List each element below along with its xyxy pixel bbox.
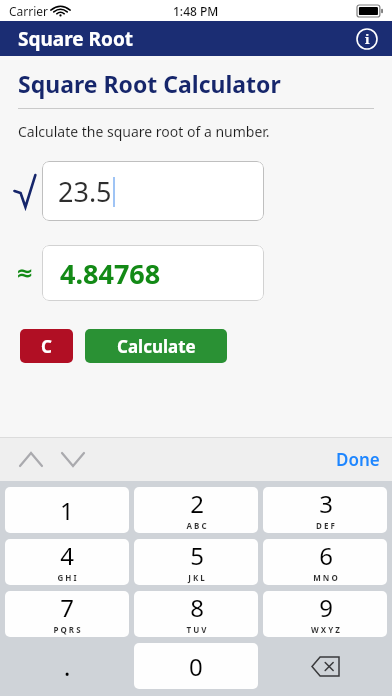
staticText: Square Root xyxy=(18,26,134,52)
staticText: 7 xyxy=(60,591,74,624)
button[interactable]: Info xyxy=(354,26,380,52)
button[interactable]: 6 xyxy=(263,539,387,585)
staticText: Calculate the square root of a number. xyxy=(18,122,270,141)
button[interactable]: Calculate xyxy=(85,329,227,363)
staticText: 2 xyxy=(190,487,204,520)
staticText: 6 xyxy=(319,539,333,572)
button[interactable]: 9 xyxy=(263,591,387,637)
staticText: W X Y Z xyxy=(311,624,340,635)
staticText: 4.84768 xyxy=(60,255,161,292)
button[interactable]: 5 xyxy=(134,539,258,585)
button[interactable]: Done xyxy=(336,448,380,471)
staticText: 4 xyxy=(60,539,74,572)
button[interactable]: C xyxy=(20,329,73,363)
staticText: ≈ xyxy=(16,261,34,285)
staticText: 0 xyxy=(189,650,203,683)
staticText: 8 xyxy=(190,591,204,624)
button[interactable]: 3 xyxy=(263,487,387,533)
staticText: . xyxy=(64,651,71,682)
button[interactable]: 8 xyxy=(134,591,258,637)
staticText: 1:48 PM xyxy=(173,3,219,19)
button[interactable]: 4 xyxy=(5,539,129,585)
staticText: M N O xyxy=(313,572,338,583)
staticText: P Q R S xyxy=(53,624,81,635)
staticText: 1 xyxy=(60,494,74,527)
staticText: J K L xyxy=(188,572,205,583)
staticText: A B C xyxy=(186,520,207,531)
staticText: Calculate xyxy=(117,335,196,358)
staticText: i xyxy=(365,30,370,48)
button[interactable]: Previous field xyxy=(14,444,48,474)
staticText: Done xyxy=(336,448,380,471)
button[interactable]: 7 xyxy=(5,591,129,637)
staticText: T U V xyxy=(186,624,207,635)
button[interactable]: . xyxy=(5,643,129,689)
staticText: C xyxy=(41,335,52,358)
button[interactable]: 1 xyxy=(5,487,129,533)
staticText: D E F xyxy=(316,520,335,531)
button[interactable]: 0 xyxy=(134,643,258,689)
staticText: 3 xyxy=(319,487,333,520)
staticText: Carrier xyxy=(9,3,49,19)
staticText: 23.5 xyxy=(58,173,112,210)
button[interactable]: 23.5 xyxy=(42,161,264,221)
button[interactable]: 2 xyxy=(134,487,258,533)
staticText: 9 xyxy=(319,591,333,624)
staticText: Square Root Calculator xyxy=(18,68,281,99)
staticText: 5 xyxy=(190,539,204,572)
button[interactable]: Next field xyxy=(56,444,90,474)
staticText: G H I xyxy=(57,572,77,583)
button[interactable]: Delete xyxy=(263,643,387,689)
